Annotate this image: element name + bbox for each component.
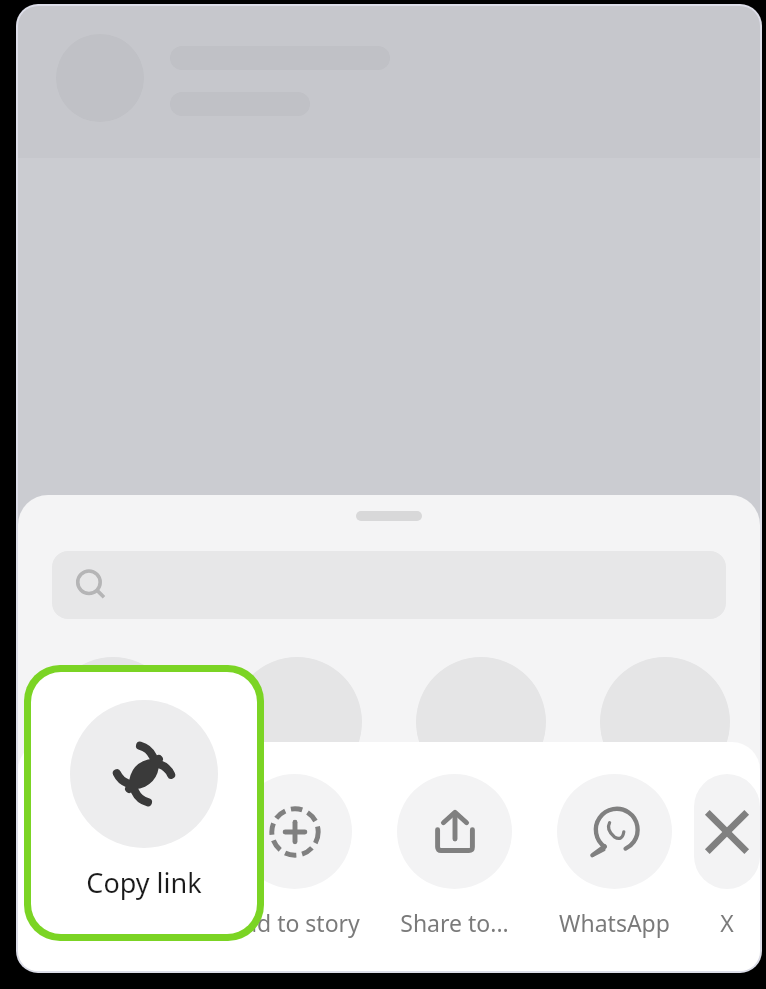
button[interactable]: Contact xyxy=(416,657,546,787)
button[interactable]: Share to xyxy=(374,774,534,938)
button[interactable]: Copy link xyxy=(54,774,214,938)
button[interactable]: X xyxy=(694,774,760,938)
button[interactable]: Contact xyxy=(600,657,730,787)
staticText: X xyxy=(720,907,734,938)
button[interactable]: Search xyxy=(52,551,726,619)
staticText: Copy link xyxy=(86,864,202,901)
staticText: Add to story xyxy=(228,907,360,938)
button[interactable]: Copy link xyxy=(31,672,257,934)
staticText: Share to... xyxy=(400,907,509,938)
staticText: WhatsApp xyxy=(559,907,670,938)
staticText: Copy link xyxy=(85,907,184,938)
button[interactable]: WhatsApp xyxy=(534,774,694,938)
button[interactable]: Add to story xyxy=(214,774,374,938)
button[interactable]: Contact xyxy=(232,657,362,787)
button[interactable]: Contact xyxy=(48,657,178,787)
